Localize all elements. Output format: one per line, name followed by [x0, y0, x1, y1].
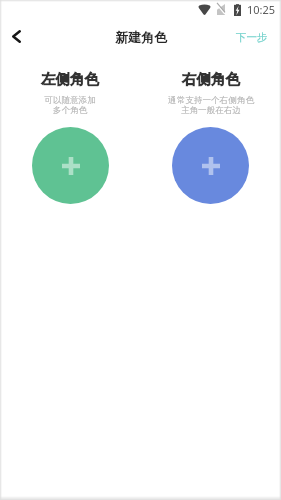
staticText: 新建角色: [115, 29, 167, 45]
button[interactable]: 下一步: [223, 24, 281, 51]
button[interactable]: Back: [1, 21, 31, 51]
button[interactable]: Add role: [172, 127, 249, 204]
staticText: 10:25: [247, 2, 276, 17]
staticText: 通常支持一个右侧角色 主角一般在右边: [168, 95, 254, 116]
staticText: 右侧角色: [182, 70, 240, 88]
staticText: 下一步: [236, 31, 268, 44]
button[interactable]: Add role: [32, 127, 109, 204]
staticText: 可以随意添加 多个角色: [44, 95, 96, 116]
staticText: 左侧角色: [41, 70, 99, 88]
